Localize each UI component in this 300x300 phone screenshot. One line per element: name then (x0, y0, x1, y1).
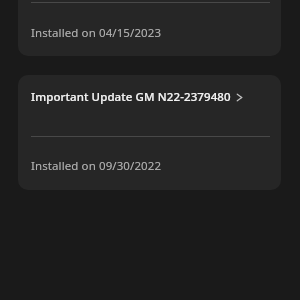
staticText: Installed on 09/30/2022 (31, 158, 162, 174)
other: Open update details (236, 92, 243, 103)
button[interactable]: Installed on 09/30/2022 (18, 149, 281, 183)
button[interactable]: Important Update GM N22-2379480 (18, 76, 281, 118)
button[interactable]: Installed on 04/15/2023 (18, 16, 281, 50)
staticText: Important Update GM N22-2379480 (31, 89, 231, 105)
staticText: Installed on 04/15/2023 (31, 25, 162, 41)
